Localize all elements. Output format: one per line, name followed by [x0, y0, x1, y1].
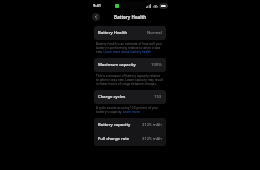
button[interactable]: Full charge rate: [94, 132, 166, 146]
button[interactable]: Charge cycles: [94, 90, 166, 104]
staticText: 153: [154, 94, 162, 100]
staticText: 9:41: [93, 3, 101, 8]
staticText: Charge cycles: [98, 94, 126, 100]
button[interactable]: Maximum capacity: [94, 58, 166, 72]
staticText: Full charge rate: [98, 136, 130, 142]
staticText: This is a measure of battery capacity re…: [96, 74, 164, 86]
staticText: Battery Health: [114, 14, 147, 20]
staticText: Battery Health: [98, 30, 128, 36]
staticText: Battery capacity: [98, 122, 131, 128]
staticText: A cycle counts as using 100 percent of y…: [96, 106, 164, 114]
button[interactable]: Battery capacity: [94, 118, 166, 132]
staticText: 100%: [151, 62, 162, 68]
staticText: Normal: [147, 30, 162, 36]
button[interactable]: Back: [92, 13, 100, 21]
staticText: 3125 mAh: [142, 136, 162, 142]
button[interactable]: Battery Health: [94, 26, 166, 40]
staticText: Battery health is an estimate of how wel…: [96, 42, 164, 54]
staticText: Maximum capacity: [98, 62, 136, 68]
staticText: 3125 mAh: [142, 122, 162, 128]
